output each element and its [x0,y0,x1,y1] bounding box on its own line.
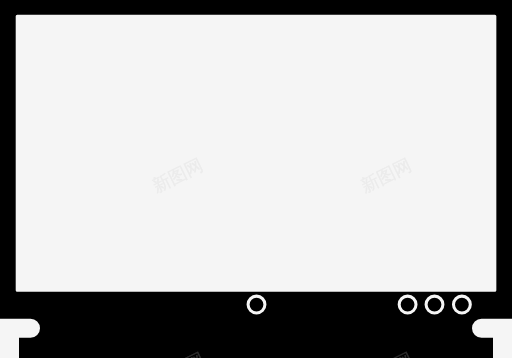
button[interactable]: Screen [16,15,497,292]
button[interactable]: Menu [399,296,416,313]
button[interactable]: Power [248,296,265,313]
button[interactable]: Source [453,296,470,313]
button[interactable]: Channel [426,296,443,313]
